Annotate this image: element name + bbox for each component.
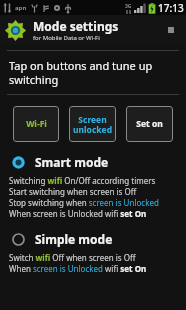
staticText: When screen is Unlocked wifi set On: [9, 263, 147, 274]
button[interactable]: Simple mode: [0, 219, 186, 274]
staticText: apn: [15, 4, 27, 12]
staticText: 17:13: [158, 1, 184, 15]
button[interactable]: Wi-Fi: [13, 106, 59, 142]
button[interactable]: Smart mode: [0, 142, 186, 219]
staticText: 3G: [125, 3, 132, 10]
staticText: Screen unlocked: [73, 114, 112, 135]
staticText: Switching wifi On/Off according timers: [9, 175, 156, 186]
staticText: Wi-Fi: [26, 118, 47, 130]
staticText: Start switching when screen is Off: [9, 186, 137, 197]
staticText: Simple mode: [35, 231, 113, 247]
staticText: Switch wifi Off when screen is Off: [9, 252, 136, 263]
staticText: Stop switching when screen is Unlocked: [9, 197, 159, 208]
staticText: Mode settings: [33, 18, 119, 34]
button[interactable]: More options: [160, 19, 182, 41]
staticText: Set on: [136, 118, 163, 130]
button[interactable]: Screen unlocked: [69, 106, 116, 142]
staticText: Smart mode: [35, 154, 109, 170]
staticText: for Mobile Data or Wi-Fi: [33, 34, 100, 42]
staticText: When screen is Unlocked wifi set On: [9, 208, 147, 219]
button[interactable]: Set on: [126, 106, 173, 142]
staticText: Tap on buttons and tune up switching: [9, 58, 177, 87]
